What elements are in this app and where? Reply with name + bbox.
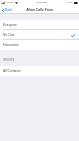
staticText: 100% xyxy=(67,1,73,4)
button[interactable]: Everyone xyxy=(0,20,79,30)
staticText: Favourites xyxy=(3,43,19,47)
staticText: Everyone xyxy=(3,23,17,27)
other: Selected xyxy=(71,34,75,37)
staticText: Back xyxy=(5,8,13,12)
button[interactable]: All Contacts xyxy=(0,66,79,76)
staticText: GROUPS xyxy=(3,59,15,62)
staticText: 9:41 AM xyxy=(37,1,47,4)
button[interactable]: Back xyxy=(0,7,15,13)
button[interactable]: No One xyxy=(0,30,79,40)
staticText: Allow Calls From xyxy=(26,8,53,12)
staticText: No One xyxy=(3,33,15,37)
staticText: All Contacts xyxy=(3,69,21,73)
staticText: Carrier xyxy=(6,1,14,4)
button[interactable]: Favourites xyxy=(0,40,79,50)
